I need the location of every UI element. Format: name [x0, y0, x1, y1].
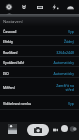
button[interactable]: Scene mode	[63, 0, 78, 14]
staticText: Rozlišení	[3, 50, 18, 55]
staticText: Vyp	[67, 101, 74, 106]
button[interactable]: Gallery	[8, 124, 17, 134]
staticText: Zaměřit na střed	[56, 83, 74, 92]
staticText: Automaticky	[53, 60, 74, 65]
staticText: Efekty	[3, 39, 14, 44]
button[interactable]: Rozlišení	[0, 47, 79, 57]
button[interactable]: Flash	[48, 0, 63, 14]
staticText: Viditelnost venku	[3, 101, 32, 106]
button[interactable]: Resolution	[32, 0, 47, 14]
staticText: Měření	[3, 85, 15, 90]
button[interactable]: Settings	[1, 0, 16, 14]
staticText: 3264x2448	[56, 50, 74, 55]
button[interactable]: Switch camera	[70, 126, 76, 132]
button[interactable]: Viditelnost venku	[0, 96, 79, 110]
button[interactable]: Effects	[16, 0, 31, 14]
button[interactable]: Časovač	[0, 26, 79, 36]
staticText: Nastavení	[3, 19, 23, 25]
staticText: Žádný	[63, 39, 74, 44]
button[interactable]: Vyvážení bílé	[0, 57, 79, 67]
staticText: Automaticky	[53, 71, 74, 76]
button[interactable]: Shutter	[27, 124, 49, 136]
button[interactable]: Měření	[0, 78, 79, 96]
button[interactable]: Mode	[61, 125, 68, 132]
staticText: Časovač	[3, 29, 17, 34]
button[interactable]: Video	[53, 128, 58, 132]
staticText: Vyp	[67, 29, 74, 34]
staticText: ISO	[3, 71, 9, 76]
button[interactable]: ISO	[0, 68, 79, 78]
button[interactable]: Efekty	[0, 36, 79, 46]
staticText: Vyvážení bílé	[3, 60, 25, 65]
